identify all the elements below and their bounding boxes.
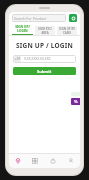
staticText: SIGN UP / LOGIN <box>9 41 80 50</box>
staticText: Search For Product <box>14 16 46 21</box>
button[interactable]: SIGN UP/LOGIN <box>12 24 33 35</box>
button[interactable]: Home <box>9 154 26 168</box>
button[interactable]: SIGN UP BY CAMS <box>57 26 77 35</box>
button[interactable]: WhatsApp <box>69 14 77 22</box>
staticText: SIGN UP/LOGIN <box>12 25 33 33</box>
button[interactable]: USER KYC/AREA <box>35 26 55 35</box>
staticText: +91 <box>15 57 21 61</box>
staticText: SIGN UP BY CAMS <box>58 27 76 35</box>
staticText: 9-XX-XXXX-XX-XXX <box>24 57 51 61</box>
button[interactable]: Cart <box>44 154 62 168</box>
button[interactable]: Account <box>62 154 80 168</box>
button[interactable]: Categories <box>26 154 44 168</box>
staticText: Submit <box>37 69 52 74</box>
button[interactable]: Submit <box>13 67 76 75</box>
button[interactable]: +91 <box>13 55 76 63</box>
button[interactable]: Offers <box>71 98 80 105</box>
button[interactable]: Search For Product <box>12 14 66 22</box>
staticText: USER KYC/AREA <box>36 27 54 35</box>
staticText: % <box>74 99 78 104</box>
